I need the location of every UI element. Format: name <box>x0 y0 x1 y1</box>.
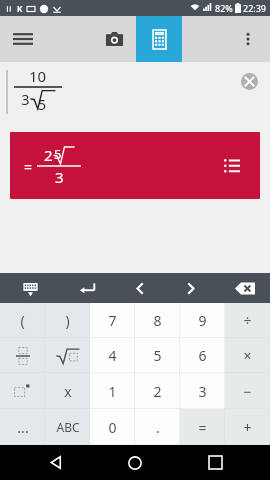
staticText: + <box>243 418 252 437</box>
staticText: 6 <box>198 346 207 365</box>
staticText: 4 <box>108 346 117 365</box>
button[interactable]: Enter <box>60 273 115 303</box>
staticText: 3 <box>21 89 30 109</box>
button[interactable]: = <box>10 132 260 199</box>
staticText: 5 <box>38 95 47 114</box>
staticText: ABC <box>56 419 80 435</box>
staticText: 9 <box>198 311 207 330</box>
staticText: x <box>64 382 72 401</box>
button[interactable]: Square <box>0 373 45 409</box>
button[interactable]: Left <box>115 273 165 303</box>
button[interactable]: More options <box>226 17 270 61</box>
button[interactable]: 5 <box>135 338 180 373</box>
staticText: 7 <box>108 311 117 330</box>
button[interactable]: Home <box>111 445 159 480</box>
button[interactable]: Right <box>165 273 215 303</box>
button[interactable]: 8 <box>135 303 180 338</box>
staticText: 10 <box>29 66 47 86</box>
button[interactable]: + <box>225 409 270 445</box>
staticText: 1 <box>108 382 117 401</box>
button[interactable]: 0 <box>90 409 135 445</box>
button[interactable]: ( <box>0 303 45 338</box>
staticText: − <box>243 382 252 401</box>
staticText: ) <box>65 311 70 330</box>
button[interactable]: ÷ <box>225 303 270 338</box>
button[interactable]: 7 <box>90 303 135 338</box>
staticText: × <box>243 346 252 365</box>
staticText: 8 <box>153 311 162 330</box>
button[interactable]: 6 <box>180 338 225 373</box>
button[interactable]: Calculator <box>136 16 182 62</box>
staticText: K <box>17 3 23 14</box>
staticText: 3 <box>55 167 64 187</box>
staticText: 5 <box>153 346 162 365</box>
staticText: . <box>156 418 160 437</box>
button[interactable]: − <box>225 373 270 409</box>
staticText: 0 <box>108 418 117 437</box>
staticText: 5 <box>54 145 62 163</box>
staticText: = <box>198 418 207 437</box>
staticText: 2 <box>153 382 162 401</box>
staticText: ÷ <box>243 311 252 330</box>
button[interactable]: Camera <box>92 17 136 61</box>
button[interactable]: 2 <box>135 373 180 409</box>
button[interactable]: ) <box>45 303 90 338</box>
button[interactable]: . <box>135 409 180 445</box>
staticText: ( <box>20 311 25 330</box>
button[interactable]: Hide keyboard <box>0 273 60 303</box>
button[interactable]: Show steps <box>220 154 244 178</box>
button[interactable]: 3 <box>180 373 225 409</box>
button[interactable]: ... <box>0 409 45 445</box>
button[interactable]: × <box>225 338 270 373</box>
button[interactable]: Square root <box>45 338 90 373</box>
button[interactable]: Backspace <box>220 273 270 303</box>
button[interactable]: Recents <box>191 445 239 480</box>
staticText: 2 <box>44 145 53 165</box>
button[interactable]: 9 <box>180 303 225 338</box>
staticText: ... <box>17 418 29 437</box>
button[interactable]: = <box>180 409 225 445</box>
staticText: 3 <box>198 382 207 401</box>
button[interactable]: ABC <box>45 409 90 445</box>
button[interactable]: x <box>45 373 90 409</box>
button[interactable]: Fraction <box>0 338 45 373</box>
button[interactable]: Menu <box>0 16 46 62</box>
staticText: = <box>24 157 33 176</box>
button[interactable]: 1 <box>90 373 135 409</box>
button[interactable]: 4 <box>90 338 135 373</box>
button[interactable]: Back <box>32 445 80 480</box>
staticText: 82% <box>215 2 233 14</box>
staticText: 22:39 <box>243 2 267 14</box>
button[interactable]: Clear <box>238 70 260 92</box>
